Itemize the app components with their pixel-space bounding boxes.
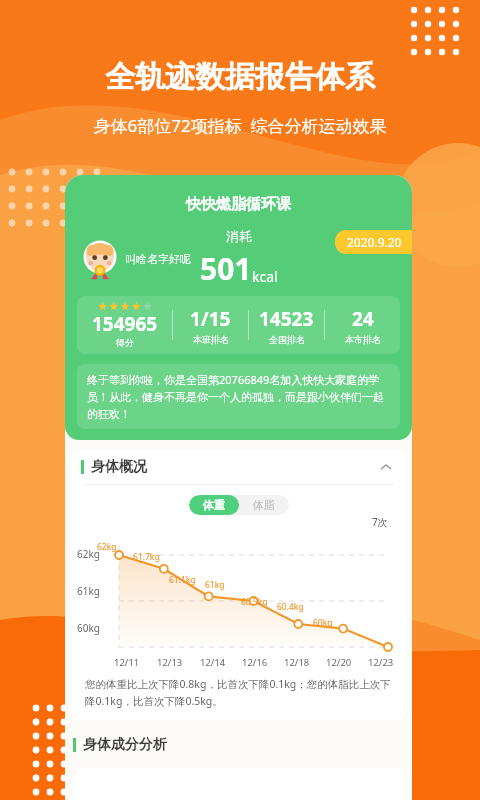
staticText: 12/13	[157, 656, 183, 669]
staticText: 24	[352, 306, 374, 332]
staticText: 12/14	[200, 656, 226, 669]
staticText: 身体概况	[91, 458, 147, 476]
staticText: 终于等到你啦，你是全国第20766849名加入快快大家庭的学员！从此，健身不再是…	[87, 372, 390, 421]
staticText: 身体成分分析	[83, 736, 167, 754]
staticText: 本班排名	[193, 334, 229, 345]
staticText: 消耗	[226, 228, 252, 244]
staticText: 体重	[203, 498, 225, 512]
staticText: 62kg	[77, 547, 100, 561]
staticText: 全轨迹数据报告体系	[0, 58, 480, 96]
staticText: kcal	[252, 267, 278, 286]
staticText: 12/11	[114, 656, 140, 669]
staticText: 14523	[259, 306, 314, 332]
staticText: 1/15	[190, 306, 231, 332]
staticText: 得分	[116, 337, 134, 348]
button[interactable]: 身体概况	[71, 450, 406, 484]
button[interactable]: 体重	[189, 495, 239, 515]
staticText: 61kg	[77, 584, 100, 598]
staticText: 身体6部位72项指标 综合分析运动效果	[0, 114, 480, 137]
staticText: 本市排名	[345, 334, 381, 345]
staticText: 12/18	[284, 656, 310, 669]
staticText: 叫啥名字好呢	[125, 252, 191, 266]
staticText: 61kg	[205, 579, 225, 591]
staticText: 体脂	[253, 498, 275, 512]
staticText: 全国排名	[269, 334, 305, 345]
staticText: 61.1kg	[169, 574, 196, 586]
staticText: 60kg	[77, 621, 100, 635]
staticText: 12/20	[326, 656, 352, 669]
staticText: 60.5kg	[241, 596, 268, 608]
staticText: 62kg	[97, 541, 117, 553]
staticText: 60kg	[313, 617, 333, 629]
button[interactable]: 身体成分分析	[65, 732, 412, 758]
staticText: 154965	[92, 311, 158, 337]
staticText: 您的体重比上次下降0.8kg，比首次下降0.1kg；您的体脂比上次下降0.1kg…	[85, 677, 392, 708]
button[interactable]: 体脂	[239, 495, 289, 515]
staticText: 60.4kg	[277, 601, 304, 613]
staticText: 61.7kg	[133, 551, 160, 563]
button[interactable]: 2020.9.20	[335, 230, 412, 254]
staticText: 快快燃脂循环课	[65, 195, 412, 214]
staticText: 501	[200, 248, 252, 289]
staticText: 12/23	[368, 656, 394, 669]
staticText: 7次	[372, 515, 388, 529]
other: Collapse	[376, 457, 396, 477]
staticText: 12/16	[242, 656, 268, 669]
staticText: 2020.9.20	[347, 234, 402, 250]
